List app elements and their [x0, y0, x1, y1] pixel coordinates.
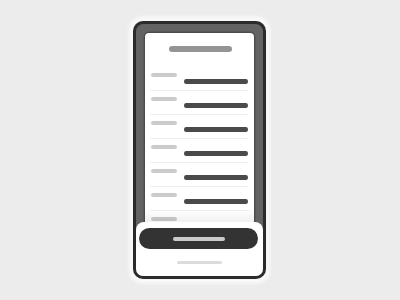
- button[interactable]: Primary action button: [139, 228, 258, 249]
- button[interactable]: [145, 192, 254, 216]
- button[interactable]: [145, 96, 254, 120]
- button[interactable]: [145, 120, 254, 144]
- button[interactable]: [145, 72, 254, 96]
- button[interactable]: [145, 168, 254, 192]
- button[interactable]: [145, 240, 254, 264]
- button[interactable]: [145, 216, 254, 240]
- button[interactable]: Screen title: [169, 46, 232, 52]
- button[interactable]: [145, 144, 254, 168]
